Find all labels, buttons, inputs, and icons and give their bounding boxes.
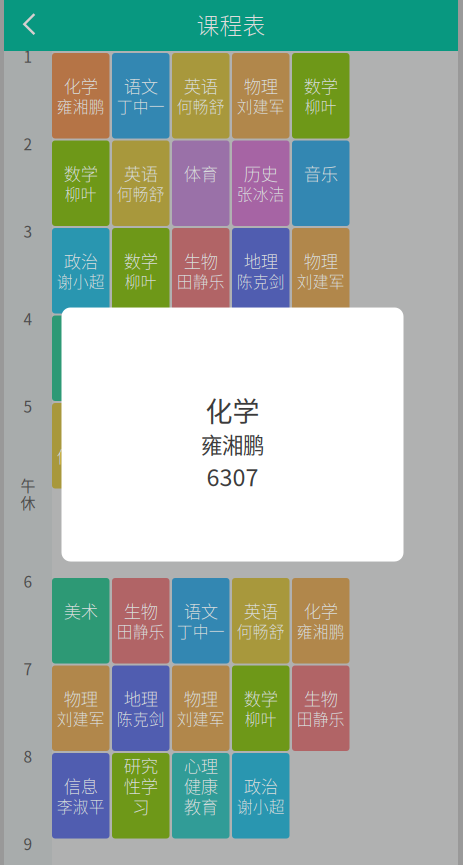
- button[interactable]: 数学: [52, 140, 109, 226]
- staticText: 何畅舒: [177, 95, 225, 117]
- button[interactable]: 英语: [232, 578, 289, 663]
- button[interactable]: 英语: [172, 315, 229, 401]
- staticText: 生物: [304, 685, 338, 711]
- staticText: 数学: [124, 248, 158, 273]
- staticText: 习: [132, 793, 149, 818]
- staticText: 生物: [124, 598, 158, 623]
- button[interactable]: 物理: [52, 665, 109, 751]
- button[interactable]: 信息: [52, 753, 109, 838]
- staticText: 英语: [124, 160, 158, 186]
- staticText: 8: [23, 745, 32, 767]
- staticText: 数学: [64, 160, 98, 186]
- button[interactable]: 英语: [172, 53, 229, 138]
- staticText: 刘建军: [297, 270, 345, 292]
- staticText: 谢小超: [237, 795, 285, 817]
- button[interactable]: 美术: [52, 315, 109, 401]
- staticText: 何畅舒: [117, 182, 165, 205]
- button[interactable]: 历史: [232, 140, 289, 226]
- staticText: 化学: [64, 73, 98, 98]
- button[interactable]: 生物: [292, 665, 349, 751]
- staticText: 陈克剑: [117, 707, 165, 730]
- button[interactable]: 数学: [232, 665, 289, 751]
- button[interactable]: 美术: [52, 578, 109, 663]
- button[interactable]: 地理: [112, 665, 169, 751]
- button[interactable]: 化学: [52, 53, 109, 138]
- button[interactable]: 体育: [172, 140, 229, 226]
- staticText: 地理: [244, 248, 278, 273]
- staticText: 语文: [124, 73, 158, 98]
- button[interactable]: Back: [0, 0, 52, 51]
- staticText: 张冰洁: [237, 182, 285, 205]
- staticText: 生物: [184, 248, 218, 273]
- button[interactable]: 物理: [292, 228, 349, 313]
- staticText: 化学: [205, 390, 259, 429]
- button[interactable]: 语文: [172, 578, 229, 663]
- staticText: 何畅舒: [237, 620, 285, 642]
- staticText: 5: [23, 395, 32, 417]
- staticText: 雍湘鹏: [297, 620, 345, 642]
- staticText: 1: [23, 45, 32, 67]
- staticText: 陈克剑: [237, 270, 285, 292]
- staticText: 柳叶: [245, 707, 277, 730]
- button[interactable]: 物理: [172, 665, 229, 751]
- staticText: 英语: [184, 73, 218, 98]
- staticText: 李淑平: [57, 795, 105, 817]
- staticText: 体育: [184, 160, 218, 186]
- button[interactable]: 政治: [52, 228, 109, 313]
- button[interactable]: 英语: [52, 403, 109, 488]
- staticText: 课程表: [196, 8, 265, 40]
- button[interactable]: 化学: [292, 578, 349, 663]
- staticText: 田静乐: [177, 270, 225, 292]
- button[interactable]: 生物: [172, 228, 229, 313]
- staticText: 何畅舒: [57, 445, 105, 467]
- staticText: 健康: [184, 773, 218, 798]
- button[interactable]: 物理: [232, 53, 289, 138]
- staticText: 午: [20, 474, 35, 496]
- button[interactable]: 语文: [112, 53, 169, 138]
- staticText: 谢小超: [237, 445, 285, 467]
- staticText: 性学: [124, 773, 158, 798]
- staticText: 6: [23, 570, 32, 592]
- button[interactable]: 化学: [232, 315, 289, 401]
- button[interactable]: 研究: [112, 753, 169, 838]
- button[interactable]: 政治: [232, 403, 289, 488]
- staticText: 物理: [304, 248, 338, 273]
- button[interactable]: 生物: [172, 403, 229, 488]
- staticText: 4: [23, 307, 32, 330]
- staticText: 地理: [124, 685, 158, 711]
- staticText: 柳叶: [65, 182, 97, 205]
- button[interactable]: 音乐: [292, 140, 349, 226]
- staticText: 政治: [64, 248, 98, 273]
- staticText: 田静乐: [297, 707, 345, 730]
- button[interactable]: 心理: [172, 753, 229, 838]
- staticText: 6307: [206, 459, 258, 493]
- button[interactable]: 数学: [292, 53, 349, 138]
- staticText: 研究: [124, 753, 158, 778]
- staticText: 物理: [64, 685, 98, 711]
- staticText: 化学: [304, 598, 338, 623]
- button[interactable]: 政治: [232, 753, 289, 838]
- staticText: 2: [23, 132, 32, 155]
- staticText: 数学: [304, 73, 338, 98]
- button[interactable]: 生物: [112, 578, 169, 663]
- button[interactable]: 数学: [112, 228, 169, 313]
- button[interactable]: 英语: [112, 140, 169, 226]
- staticText: 田静乐: [177, 445, 225, 467]
- button[interactable]: 地理: [232, 228, 289, 313]
- staticText: 语文: [184, 598, 218, 623]
- staticText: 刘建军: [57, 707, 105, 730]
- staticText: 丁中一: [177, 620, 225, 642]
